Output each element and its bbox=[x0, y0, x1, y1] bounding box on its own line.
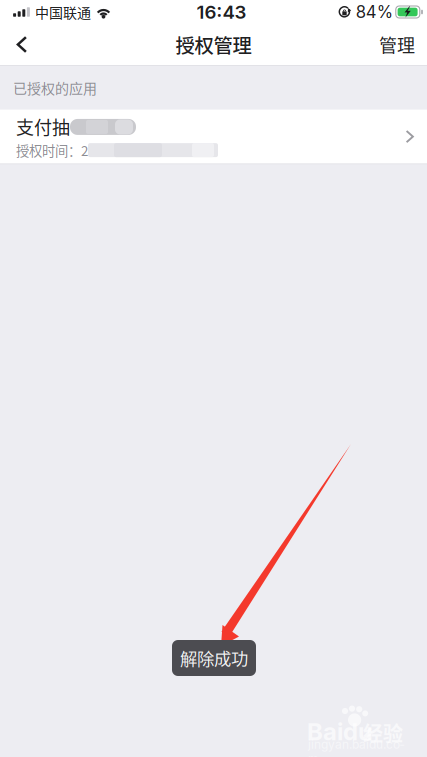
button[interactable]: 支付抽 bbox=[0, 110, 427, 164]
staticText: 支付抽 bbox=[16, 113, 70, 139]
button[interactable]: 管理 bbox=[363, 24, 427, 65]
staticText: 84% bbox=[356, 2, 393, 22]
button[interactable]: 返回 bbox=[0, 24, 44, 65]
staticText: 管理 bbox=[379, 31, 415, 58]
staticText: jingyan.baidu.com bbox=[308, 737, 404, 757]
staticText: 16:43 bbox=[196, 1, 246, 23]
staticText: 中国联通 bbox=[35, 2, 91, 22]
staticText: 解除成功 bbox=[180, 645, 248, 671]
staticText: 经验 bbox=[363, 718, 403, 747]
staticText: 已授权的应用 bbox=[13, 77, 97, 98]
staticText: 授权管理 bbox=[175, 30, 251, 58]
staticText: 授权时间：2 bbox=[16, 140, 88, 160]
staticText: Baidu bbox=[307, 717, 373, 746]
